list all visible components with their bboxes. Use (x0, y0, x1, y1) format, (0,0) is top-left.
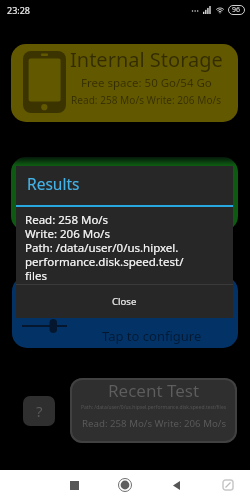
staticText: Free space: 50 Go/54 Go (81, 75, 212, 91)
staticText: Path: /data/user/0/us.hipxel.performance… (81, 404, 227, 411)
button[interactable]: Back (164, 473, 188, 497)
staticText: Tap to configure (102, 327, 202, 345)
button[interactable]: Recents (62, 473, 86, 497)
staticText: Close (112, 295, 137, 308)
button[interactable]: Home (113, 473, 137, 497)
staticText: 96 (232, 5, 241, 15)
staticText: Results (27, 173, 80, 194)
staticText: Recent Test (108, 379, 200, 402)
staticText: ? (36, 401, 43, 421)
staticText: Read: 258 Mo/s Write: 206 Mo/s Path: /da… (25, 212, 184, 283)
button[interactable]: Recent Test (70, 378, 237, 443)
staticText: 23:28 (7, 4, 31, 16)
button[interactable]: Tap to configure (12, 276, 238, 348)
button[interactable] (11, 157, 238, 231)
button[interactable]: Internal Storage (11, 44, 238, 122)
staticText: Read: 258 Mo/s Write: 206 Mo/s (71, 93, 222, 107)
button[interactable]: Close (16, 285, 233, 318)
staticText: Internal Storage (70, 46, 223, 73)
button[interactable]: Help (23, 396, 55, 426)
staticText: Read: 258 Mo/s Write: 206 Mo/s (82, 417, 227, 430)
button[interactable]: Screenshot (216, 473, 240, 497)
